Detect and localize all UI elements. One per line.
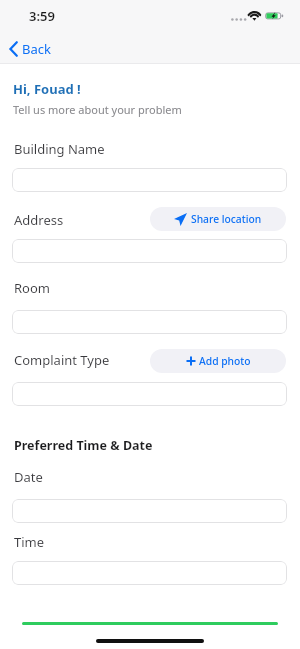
- staticText: 3:59: [29, 7, 55, 25]
- button[interactable]: Room: [12, 310, 287, 334]
- staticText: Room: [14, 279, 50, 297]
- staticText: Add photo: [199, 354, 251, 368]
- staticText: Address: [14, 211, 64, 229]
- staticText: Time: [14, 533, 45, 551]
- button[interactable]: Time: [12, 561, 287, 585]
- staticText: Building Name: [14, 140, 105, 158]
- staticText: Share location: [191, 212, 262, 226]
- staticText: Back: [22, 40, 51, 58]
- staticText: Hi, Fouad !: [13, 80, 81, 98]
- button[interactable]: Building Name: [12, 168, 287, 192]
- button[interactable]: Share location: [150, 207, 286, 231]
- button[interactable]: Complaint Type: [12, 382, 287, 406]
- staticText: Preferred Time & Date: [14, 437, 153, 454]
- button[interactable]: Back: [6, 38, 54, 60]
- button[interactable]: Submit: [22, 622, 278, 625]
- button[interactable]: Date: [12, 499, 287, 523]
- button[interactable]: Address: [12, 239, 287, 263]
- button[interactable]: Add photo: [150, 349, 286, 373]
- staticText: Tell us more about your problem: [13, 102, 182, 117]
- staticText: Date: [14, 468, 43, 486]
- staticText: Complaint Type: [14, 351, 110, 369]
